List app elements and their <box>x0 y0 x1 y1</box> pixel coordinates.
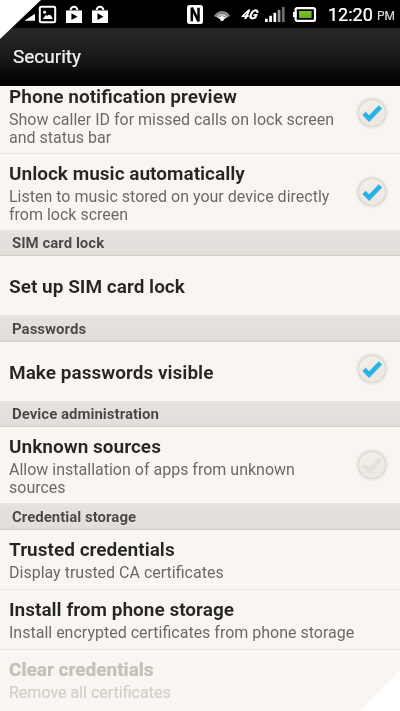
button[interactable]: Install from phone storage <box>0 590 400 650</box>
staticText: Install from phone storage <box>9 598 235 620</box>
button[interactable]: Phone notification preview <box>0 86 400 154</box>
staticText: 4G <box>241 7 257 22</box>
staticText: Passwords <box>12 320 87 338</box>
staticText: Clear credentials <box>9 658 154 680</box>
button[interactable]: Set up SIM card lock <box>0 256 400 316</box>
staticText: PM <box>377 9 396 23</box>
staticText: Listen to music stored on your device di… <box>9 187 330 224</box>
staticText: Unknown sources <box>9 435 161 457</box>
staticText: Device administration <box>12 405 159 423</box>
button[interactable]: Make passwords visible <box>0 342 400 402</box>
staticText: Credential storage <box>12 508 137 526</box>
staticText: Allow installation of apps from unknown … <box>9 460 295 497</box>
staticText: Show caller ID for missed calls on lock … <box>9 110 335 147</box>
button[interactable]: Trusted credentials <box>0 530 400 590</box>
staticText: Unlock music automatically <box>9 162 245 184</box>
staticText: SIM card lock <box>12 234 105 252</box>
staticText: Trusted credentials <box>9 538 175 560</box>
button[interactable]: Clear credentials <box>0 650 400 711</box>
staticText: Security <box>13 45 82 67</box>
button[interactable]: Unknown sources <box>0 427 400 504</box>
staticText: Make passwords visible <box>9 361 214 383</box>
staticText: Install encrypted certificates from phon… <box>9 623 355 642</box>
staticText: 12:20 <box>328 4 373 25</box>
staticText: Display trusted CA certificates <box>9 563 224 582</box>
button[interactable]: Unlock music automatically <box>0 154 400 231</box>
staticText: Remove all certificates <box>9 683 171 702</box>
staticText: Set up SIM card lock <box>9 275 185 297</box>
staticText: Phone notification preview <box>9 85 237 107</box>
